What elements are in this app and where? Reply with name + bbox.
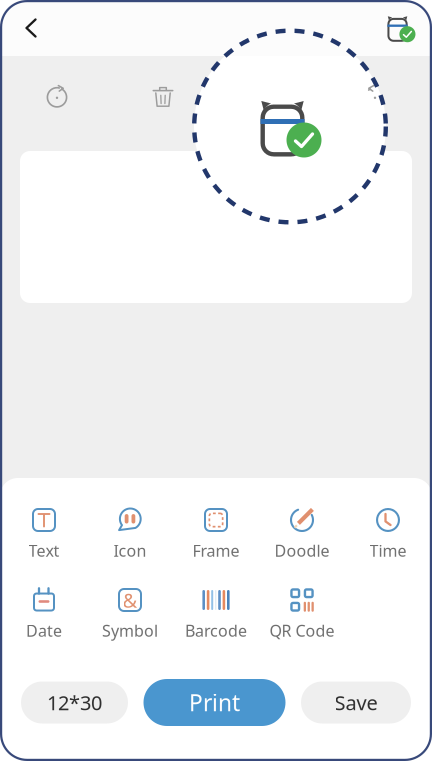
button[interactable]: Redo: [34, 74, 80, 120]
button[interactable]: Text: [1, 507, 87, 559]
button[interactable]: Printer connected: [379, 6, 423, 50]
button[interactable]: Barcode: [173, 587, 259, 639]
button[interactable]: Delete: [140, 74, 186, 120]
staticText: Time: [369, 540, 406, 561]
button[interactable]: Date: [1, 587, 87, 639]
staticText: Frame: [192, 540, 239, 561]
staticText: Symbol: [102, 620, 158, 641]
staticText: Doodle: [274, 540, 329, 561]
button[interactable]: Save: [301, 681, 411, 723]
button[interactable]: Icon: [87, 507, 173, 559]
staticText: &: [122, 587, 137, 613]
staticText: Save: [334, 689, 377, 716]
button[interactable]: Back: [9, 6, 53, 50]
button[interactable]: Print: [143, 679, 285, 726]
staticText: Icon: [113, 540, 146, 561]
staticText: Date: [26, 620, 62, 641]
button[interactable]: Undo: [352, 74, 398, 120]
staticText: Text: [28, 540, 59, 561]
staticText: Print: [189, 687, 240, 717]
button[interactable]: 12*30: [21, 681, 128, 723]
button[interactable]: Printer settings: [246, 74, 292, 120]
button[interactable]: &: [87, 587, 173, 639]
staticText: 12*30: [47, 689, 102, 716]
button[interactable]: Time: [345, 507, 431, 559]
button[interactable]: QR Code: [259, 587, 345, 639]
button[interactable]: Doodle: [259, 507, 345, 559]
button[interactable]: Frame: [173, 507, 259, 559]
staticText: Barcode: [185, 620, 247, 641]
staticText: QR Code: [269, 620, 334, 641]
